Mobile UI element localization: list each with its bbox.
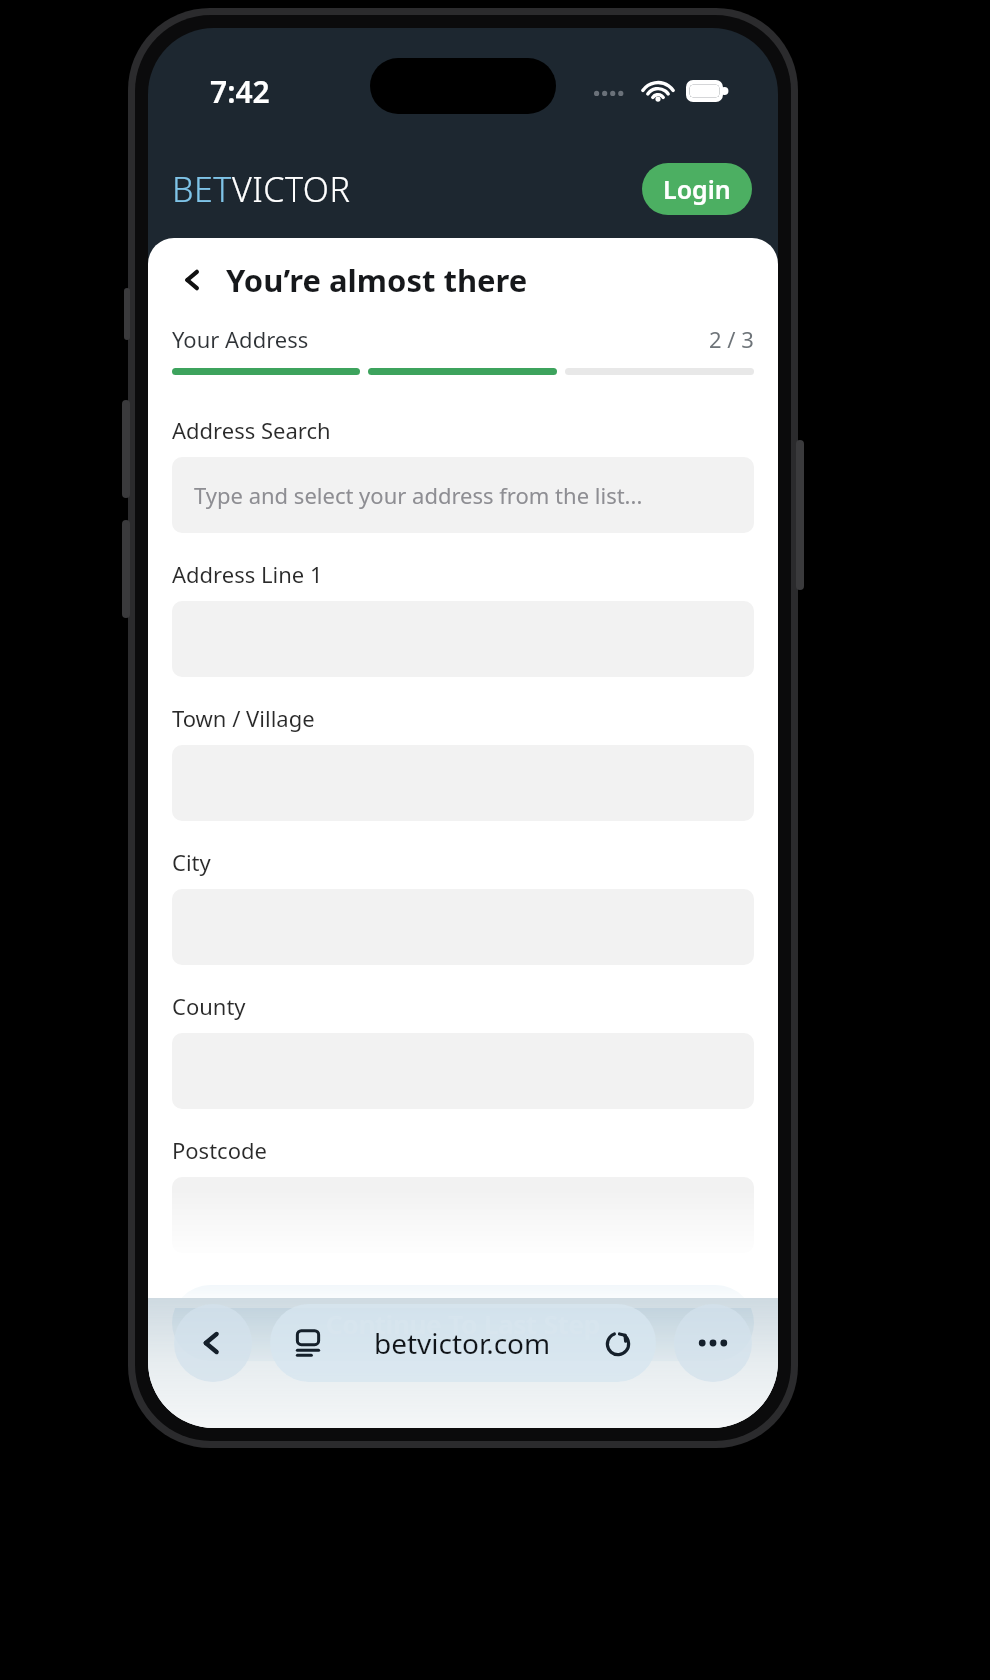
staticText: County (172, 991, 246, 1021)
staticText: Your Address (172, 324, 309, 354)
staticText: 2 / 3 (709, 324, 754, 354)
button[interactable]: Page settings (270, 1304, 656, 1382)
button[interactable]: Back (174, 1304, 252, 1382)
staticText: VICTOR (232, 166, 351, 212)
staticText: betvictor.com (374, 1324, 551, 1362)
staticText: Type and select your address from the li… (194, 480, 643, 510)
button[interactable]: Type and select your address from the li… (172, 457, 754, 533)
staticText: Address Search (172, 415, 331, 445)
staticText: You’re almost there (226, 259, 528, 301)
button[interactable] (172, 1177, 754, 1253)
staticText: 7:42 (210, 71, 270, 112)
staticText: Postcode (172, 1135, 267, 1165)
button[interactable]: Continue To Last Step (172, 1285, 754, 1361)
other: Reload (604, 1329, 632, 1357)
button[interactable]: Login (642, 163, 752, 215)
button[interactable]: Back (172, 258, 216, 302)
staticText: Town / Village (172, 703, 315, 733)
staticText: Login (663, 172, 731, 206)
staticText: Address Line 1 (172, 559, 323, 589)
staticText: City (172, 847, 211, 877)
button[interactable]: More options (674, 1304, 752, 1382)
other: Page settings (294, 1329, 322, 1357)
staticText: BET (172, 166, 232, 212)
staticText: Continue To Last Step (326, 1306, 600, 1341)
